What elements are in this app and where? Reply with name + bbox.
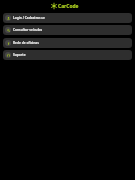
staticText: Login / Cadastrar-se [13,16,45,20]
staticText: CarCode [58,3,79,10]
staticText: Suporte [13,53,26,57]
other: CarCode logo [51,3,57,9]
button[interactable]: Login / Cadastrar-se [3,13,132,23]
staticText: Rede de oficinas [13,41,39,45]
button[interactable]: Rede de oficinas [3,38,132,48]
button[interactable]: Suporte [3,50,132,60]
button[interactable]: Consultar veículos [3,25,132,35]
staticText: Consultar veículos [13,28,43,32]
